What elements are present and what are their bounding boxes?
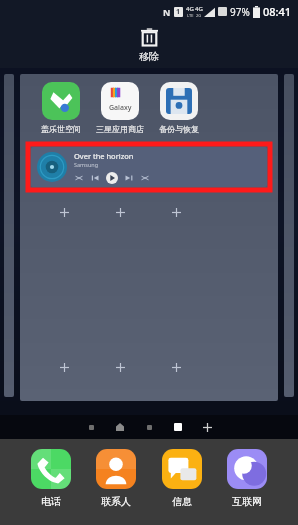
staticText: Over the horizon bbox=[74, 151, 134, 161]
button[interactable]: 盖乐世空间 bbox=[20, 74, 278, 401]
staticText: 4G bbox=[195, 5, 203, 13]
button[interactable]: Add item bbox=[92, 204, 148, 220]
staticText: 移除 bbox=[139, 50, 159, 63]
staticText: 信息 bbox=[172, 495, 192, 508]
button[interactable]: 盖乐世空间 bbox=[34, 82, 87, 134]
button[interactable]: Add item bbox=[36, 204, 92, 220]
button[interactable]: Add item bbox=[36, 359, 92, 375]
staticText: 联系人 bbox=[101, 495, 131, 508]
staticText: Galaxy bbox=[109, 103, 132, 113]
button[interactable]: 联系人 bbox=[96, 449, 136, 508]
staticText: 备份与恢复 bbox=[159, 124, 199, 134]
button[interactable]: Add item bbox=[92, 359, 148, 375]
staticText: N bbox=[163, 6, 171, 18]
button[interactable]: 电话 bbox=[31, 449, 71, 508]
staticText: 三星应用商店 bbox=[96, 124, 144, 134]
staticText: 互联网 bbox=[232, 495, 262, 508]
staticText: 08:41 bbox=[263, 4, 292, 19]
button[interactable]: Add item bbox=[148, 204, 205, 220]
button[interactable]: Home page bbox=[114, 421, 126, 433]
button[interactable]: Page bbox=[143, 421, 155, 433]
button[interactable]: Page bbox=[85, 421, 97, 433]
button[interactable]: Add page bbox=[201, 421, 213, 433]
button[interactable]: 备份与恢复 bbox=[152, 82, 205, 134]
staticText: 97% bbox=[230, 5, 250, 19]
staticText: 2G bbox=[196, 13, 202, 18]
button[interactable]: Galaxy bbox=[93, 82, 146, 134]
staticText: 1 bbox=[176, 7, 181, 17]
staticText: 盖乐世空间 bbox=[41, 124, 81, 134]
staticText: Samsung bbox=[74, 161, 99, 168]
button[interactable]: prev bbox=[90, 173, 100, 183]
button[interactable]: repeat bbox=[140, 173, 150, 183]
button[interactable]: 信息 bbox=[162, 449, 202, 508]
button[interactable]: next bbox=[124, 173, 134, 183]
staticText: 电话 bbox=[41, 495, 61, 508]
button[interactable]: Page bbox=[172, 421, 184, 433]
button[interactable]: Over the horizon bbox=[31, 147, 267, 187]
staticText: LTE bbox=[187, 13, 194, 18]
button[interactable]: shuffle bbox=[74, 173, 84, 183]
button[interactable]: 移除 bbox=[0, 22, 298, 68]
button[interactable]: 互联网 bbox=[227, 449, 267, 508]
button[interactable]: Add item bbox=[148, 359, 205, 375]
staticText: 4G bbox=[186, 5, 194, 13]
button[interactable]: Play bbox=[106, 172, 118, 184]
